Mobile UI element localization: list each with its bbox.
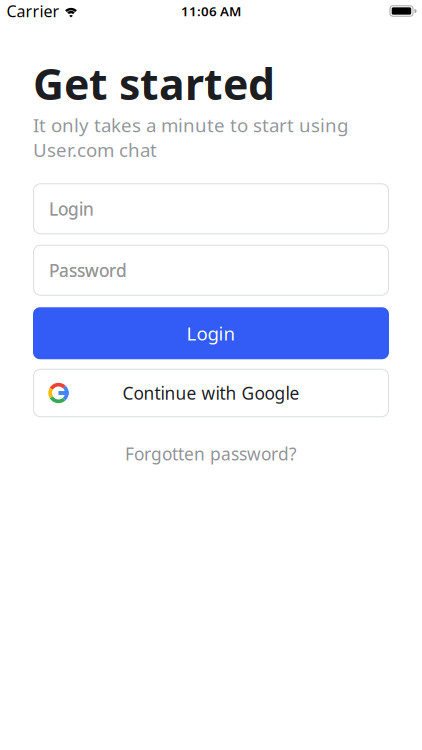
button[interactable]: Login bbox=[33, 307, 389, 359]
staticText: Login bbox=[49, 197, 94, 220]
staticText: It only takes a minute to start using Us… bbox=[33, 113, 348, 162]
button[interactable]: Continue with Google bbox=[33, 369, 389, 417]
staticText: Password bbox=[49, 259, 127, 282]
textField[interactable]: Login bbox=[49, 197, 373, 220]
staticText: Login bbox=[186, 321, 235, 346]
secureTextField[interactable]: Password bbox=[49, 259, 373, 282]
staticText: 11:06 AM bbox=[181, 2, 241, 20]
staticText: Forgotten password? bbox=[125, 442, 297, 465]
staticText: Continue with Google bbox=[122, 381, 299, 404]
staticText: Password bbox=[49, 259, 127, 282]
staticText: Carrier bbox=[6, 0, 59, 22]
staticText: Login bbox=[49, 197, 94, 220]
button[interactable]: Forgotten password? bbox=[125, 442, 297, 465]
staticText: Get started bbox=[33, 55, 275, 112]
